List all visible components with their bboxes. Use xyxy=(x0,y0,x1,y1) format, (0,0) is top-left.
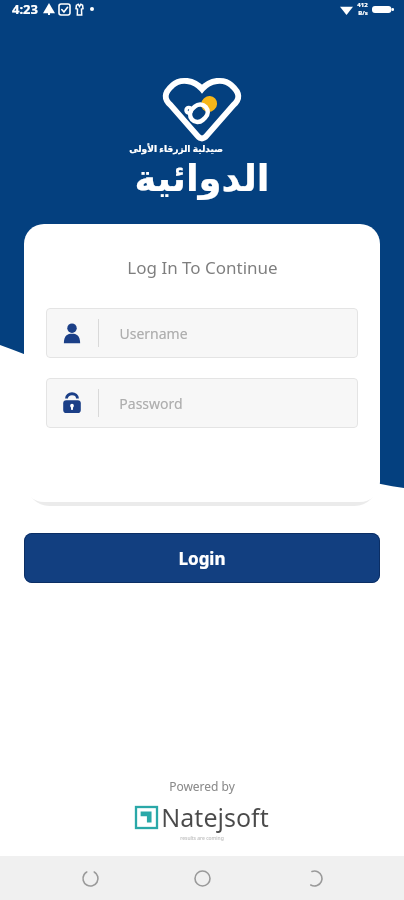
button[interactable]: Login xyxy=(24,533,380,583)
staticText: الدوائية xyxy=(134,157,270,200)
button[interactable]: Home xyxy=(180,856,224,900)
staticText: 4:23 xyxy=(12,0,38,18)
staticText: Powered by xyxy=(169,778,235,794)
staticText: 412 xyxy=(357,1,368,9)
staticText: صيدلية الزرقاء الأولى xyxy=(129,142,223,154)
button[interactable]: Username xyxy=(46,308,358,358)
staticText: results are coming xyxy=(180,835,224,842)
staticText: Username xyxy=(119,324,188,343)
other: Username xyxy=(61,322,83,344)
button[interactable]: Back xyxy=(292,856,336,900)
staticText: Login xyxy=(178,547,226,570)
button[interactable]: Recents xyxy=(68,856,112,900)
staticText: Natejsoft xyxy=(161,800,269,834)
staticText: B/s xyxy=(358,9,368,17)
other: Password xyxy=(61,392,83,414)
staticText: Password xyxy=(119,394,183,413)
button[interactable]: Password xyxy=(46,378,358,428)
staticText: Log In To Continue xyxy=(127,256,278,279)
